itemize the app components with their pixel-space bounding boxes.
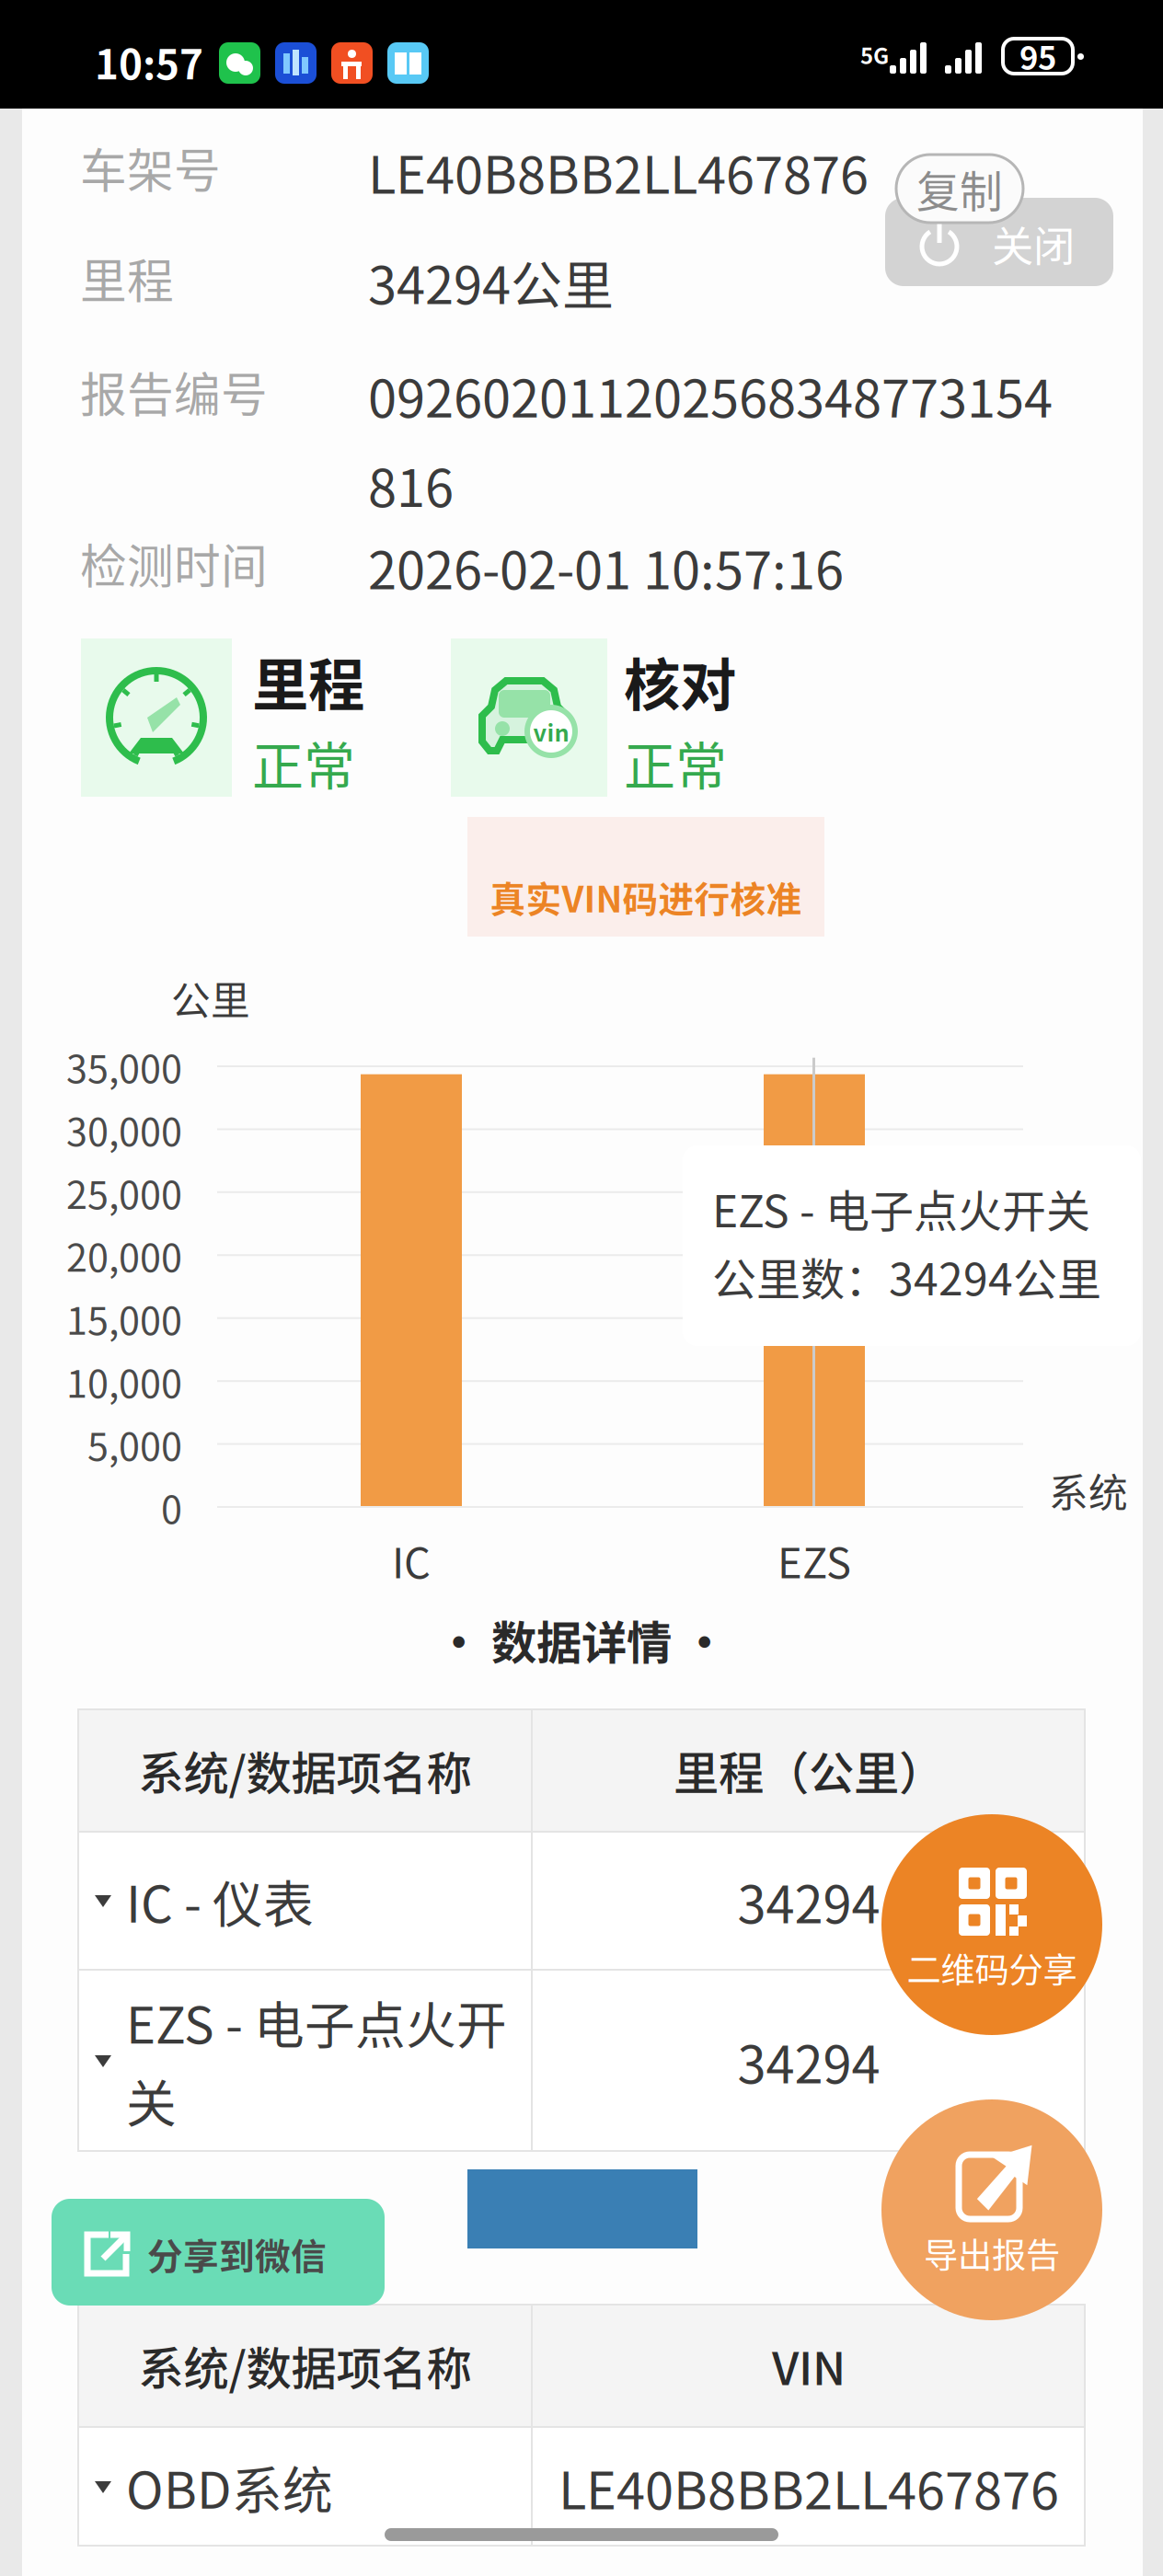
staticText: 正常 <box>624 725 727 800</box>
staticText: 系统/数据项名称 <box>138 1737 472 1803</box>
staticText: 95 <box>1019 33 1056 79</box>
staticText: IC <box>392 1530 431 1590</box>
staticText: 5G <box>860 39 889 71</box>
staticText: 检测时间 <box>80 529 268 597</box>
staticText: 真实VIN码进行核准 <box>490 871 802 923</box>
staticText: 10,000 <box>66 1354 182 1409</box>
button[interactable]: 复制 <box>896 155 1023 223</box>
button[interactable]: 二维码分享 <box>881 1814 1102 2035</box>
staticText: 二维码分享 <box>907 1943 1077 1993</box>
staticText: 2026-02-01 10:57:16 <box>368 529 844 604</box>
staticText: 复制 <box>916 158 1003 220</box>
staticText: LE40B8BB2LL467876 <box>368 134 869 208</box>
staticText: 公里数：34294公里 <box>712 1244 1101 1308</box>
staticText: EZS <box>777 1530 851 1590</box>
staticText: vin <box>533 715 569 748</box>
staticText: 34294 <box>737 2024 880 2098</box>
staticText: 公里 <box>171 970 250 1027</box>
staticText: 导出报告 <box>924 2228 1060 2278</box>
staticText: 车架号 <box>80 134 221 201</box>
staticText: 816 <box>368 447 454 522</box>
staticText: 里程（公里） <box>674 1737 944 1803</box>
staticText: 核对 <box>624 640 736 722</box>
staticText: 分享到微信 <box>147 2228 327 2280</box>
button[interactable]: 导出报告 <box>881 2099 1102 2320</box>
staticText: 关 <box>126 2064 177 2136</box>
staticText: 系统 <box>1049 1462 1128 1519</box>
button[interactable]: 分享到微信 <box>52 2199 385 2306</box>
staticText: EZS - 电子点火开关 <box>712 1176 1090 1240</box>
staticText: 20,000 <box>66 1228 182 1283</box>
staticText: 34294公里 <box>368 244 614 319</box>
staticText: 35,000 <box>66 1039 182 1094</box>
staticText: 里程 <box>252 640 364 722</box>
staticText: · 数据详情 · <box>436 1607 727 1672</box>
staticText: 关闭 <box>992 214 1075 274</box>
staticText: 25,000 <box>66 1165 182 1220</box>
staticText: 0 <box>161 1479 182 1535</box>
staticText: 15,000 <box>66 1291 182 1346</box>
staticText: 10:57 <box>95 32 203 91</box>
button[interactable]: 关闭 <box>885 198 1113 286</box>
staticText: 092602011202568348773154 <box>368 358 1053 432</box>
staticText: EZS - 电子点火开 <box>126 1985 507 2058</box>
staticText: 系统/数据项名称 <box>138 2332 472 2398</box>
staticText: 5,000 <box>87 1416 182 1472</box>
staticText: LE40B8BB2LL467876 <box>558 2449 1059 2524</box>
staticText: 正常 <box>252 725 355 800</box>
staticText: IC - 仪表 <box>126 1864 314 1937</box>
staticText: 报告编号 <box>80 358 268 425</box>
staticText: 里程 <box>80 244 174 312</box>
staticText: VIN <box>772 2332 846 2398</box>
staticText: 30,000 <box>66 1102 182 1157</box>
staticText: 34294 <box>737 1863 880 1938</box>
staticText: OBD系统 <box>126 2450 333 2523</box>
